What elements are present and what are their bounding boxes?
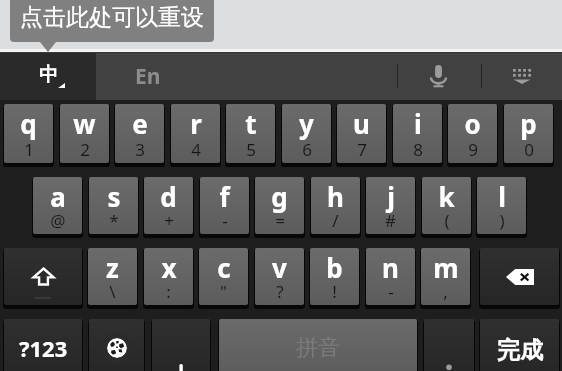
staticText: h — [327, 179, 344, 214]
button[interactable]: n — [366, 248, 415, 305]
staticText: p — [520, 106, 537, 141]
staticText: # — [385, 209, 396, 232]
staticText: 2 — [80, 138, 90, 161]
button[interactable]: p — [504, 104, 553, 163]
button[interactable]: x — [144, 248, 193, 305]
button[interactable]: j — [366, 177, 415, 234]
button[interactable]: a — [33, 177, 82, 234]
staticText: j — [387, 179, 395, 214]
button[interactable]: h — [311, 177, 360, 234]
button[interactable]: f — [200, 177, 249, 234]
button[interactable]: c — [199, 248, 248, 305]
staticText: f — [219, 179, 230, 214]
button[interactable]: z — [88, 248, 137, 305]
staticText: 点击此处可以重设 — [20, 3, 204, 32]
staticText: b — [326, 250, 343, 285]
staticText: ) — [499, 209, 505, 232]
staticText: n — [382, 250, 399, 285]
staticText: 1 — [24, 138, 34, 161]
staticText: o — [464, 106, 481, 141]
button[interactable]: y — [282, 104, 331, 163]
staticText: En — [135, 62, 161, 91]
staticText: s — [107, 179, 121, 214]
staticText: 9 — [468, 138, 478, 161]
staticText: ( — [444, 209, 450, 232]
staticText: q — [20, 106, 37, 141]
button[interactable]: Shift — [4, 248, 82, 305]
staticText: ! — [332, 280, 337, 303]
button[interactable]: u — [337, 104, 386, 163]
button[interactable]: Backspace — [480, 248, 559, 305]
staticText: 3 — [135, 138, 145, 161]
staticText: k — [438, 179, 455, 214]
staticText: 完成 — [497, 336, 543, 365]
button[interactable]: l — [477, 177, 526, 234]
button[interactable]: k — [422, 177, 471, 234]
button[interactable]: 中 — [0, 53, 96, 100]
button[interactable]: Period — [424, 319, 474, 371]
staticText: u — [353, 106, 370, 141]
staticText: - — [222, 209, 228, 232]
staticText: 5 — [246, 138, 256, 161]
staticText: i — [414, 106, 422, 141]
staticText: t — [245, 106, 257, 141]
staticText: 4 — [191, 138, 201, 161]
button[interactable]: Change language — [89, 319, 144, 371]
staticText: e — [132, 106, 148, 141]
button[interactable]: m — [421, 248, 470, 305]
staticText: * — [109, 209, 119, 232]
staticText: g — [271, 179, 288, 214]
staticText: 8 — [413, 138, 423, 161]
staticText: ?123 — [19, 333, 68, 363]
button[interactable]: o — [448, 104, 497, 163]
staticText: d — [160, 179, 177, 214]
button[interactable]: Voice input — [410, 55, 466, 97]
button[interactable]: q — [4, 104, 53, 163]
staticText: 6 — [302, 138, 312, 161]
button[interactable]: En — [96, 54, 200, 100]
staticText: v — [272, 250, 287, 285]
staticText: ? — [276, 280, 284, 303]
button[interactable]: b — [310, 248, 359, 305]
staticText: / — [332, 209, 339, 232]
staticText: z — [106, 250, 119, 285]
staticText: 7 — [357, 138, 367, 161]
button[interactable]: Hide keyboard — [494, 55, 550, 97]
staticText: + — [164, 209, 174, 232]
button[interactable]: Comma — [152, 319, 210, 371]
staticText: a — [50, 179, 66, 214]
button[interactable]: e — [115, 104, 164, 163]
staticText: \ — [109, 280, 116, 303]
button[interactable]: g — [255, 177, 304, 234]
staticText: 拼音 — [296, 334, 340, 362]
button[interactable]: 点击此处可以重设 — [10, 0, 214, 42]
staticText: c — [217, 250, 231, 285]
button[interactable]: v — [255, 248, 304, 305]
button[interactable]: i — [393, 104, 442, 163]
staticText: 中 — [39, 63, 58, 87]
button[interactable]: t — [226, 104, 275, 163]
button[interactable]: d — [144, 177, 193, 234]
staticText: : — [166, 280, 171, 303]
button[interactable]: r — [171, 104, 220, 163]
staticText: m — [433, 250, 459, 285]
button[interactable]: 完成 — [480, 319, 559, 371]
staticText: l — [498, 179, 506, 214]
staticText: x — [161, 250, 177, 285]
button[interactable]: Space — [219, 319, 417, 371]
staticText: , — [443, 280, 448, 303]
staticText: y — [299, 106, 314, 141]
staticText: = — [275, 209, 285, 232]
button[interactable]: s — [89, 177, 138, 234]
staticText: @ — [50, 209, 66, 232]
staticText: " — [220, 280, 227, 303]
staticText: r — [190, 106, 202, 141]
button[interactable]: w — [60, 104, 109, 163]
staticText: - — [388, 280, 394, 303]
staticText: 0 — [524, 138, 534, 161]
staticText: w — [73, 106, 96, 141]
button[interactable]: ?123 — [4, 319, 82, 371]
